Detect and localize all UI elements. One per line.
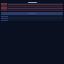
button[interactable]: Row xyxy=(1,19,63,21)
button[interactable]: Title xyxy=(1,1,63,3)
button[interactable]: Row xyxy=(1,15,63,17)
button[interactable]: List item xyxy=(1,9,63,11)
button[interactable]: Primary action xyxy=(1,12,63,15)
button[interactable]: List item xyxy=(1,3,63,5)
button[interactable]: List item xyxy=(1,5,63,7)
button[interactable]: List item xyxy=(1,7,63,9)
button[interactable]: Row xyxy=(1,17,63,19)
